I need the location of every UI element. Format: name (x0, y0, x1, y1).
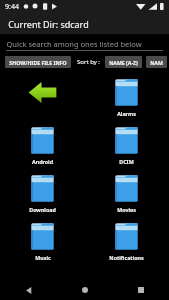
staticText: SHOW/HIDE FILE INFO (9, 59, 67, 66)
staticText: Android (32, 158, 53, 165)
button[interactable]: NAM (146, 56, 167, 68)
staticText: Alarms (117, 110, 136, 117)
staticText: NAME (A-Z) (109, 59, 138, 66)
button[interactable]: SHOW/HIDE FILE INFO (5, 56, 71, 68)
staticText: Notifications (109, 254, 144, 261)
button[interactable]: Go up one directory (0, 73, 84, 121)
button[interactable]: DCIM (84, 121, 169, 169)
button[interactable]: Recent apps (124, 280, 158, 300)
button[interactable]: Download (0, 169, 84, 217)
staticText: 9:44 (5, 2, 19, 12)
button[interactable]: Music (0, 217, 84, 265)
staticText: Download (29, 206, 56, 213)
staticText: Music (35, 254, 51, 261)
staticText: Sort by : (77, 58, 100, 66)
button[interactable]: Movies (84, 169, 169, 217)
staticText: Current Dir: sdcard (8, 18, 89, 30)
staticText: NAM (150, 59, 163, 66)
button[interactable]: Notifications (84, 217, 169, 265)
staticText: DCIM (119, 158, 134, 165)
button[interactable]: Back (11, 280, 45, 300)
button[interactable]: Quick search among ones listed below (6, 37, 163, 50)
button[interactable]: Alarms (84, 73, 169, 121)
button[interactable]: Home (68, 280, 102, 300)
staticText: Movies (117, 206, 136, 213)
staticText: Quick search among ones listed below (6, 39, 142, 49)
button[interactable]: Android (0, 121, 84, 169)
button[interactable]: NAME (A-Z) (105, 56, 142, 68)
